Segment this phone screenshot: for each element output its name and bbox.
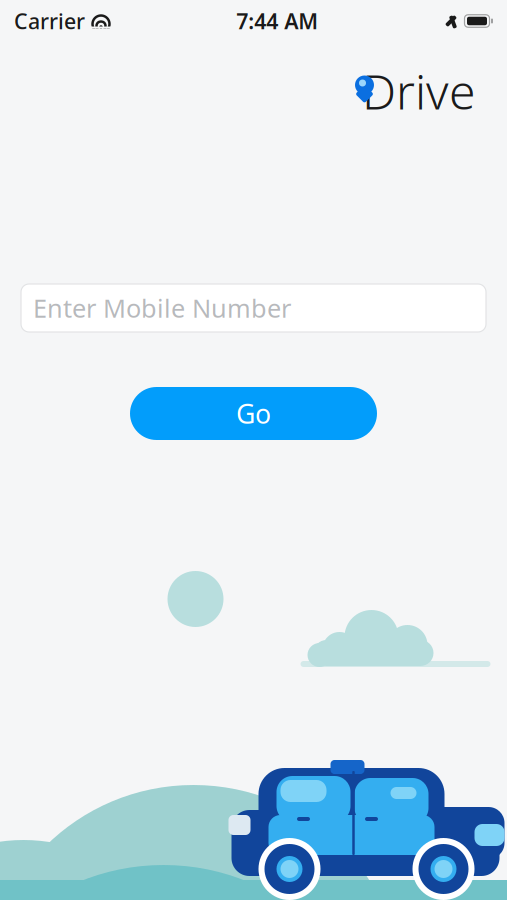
staticText: Enter Mobile Number: [33, 291, 291, 325]
staticText: Drive: [362, 59, 475, 123]
staticText: 7:44 AM: [236, 7, 318, 35]
button[interactable]: Go: [130, 387, 377, 440]
button[interactable]: Enter Mobile Number: [21, 284, 486, 332]
staticText: Go: [236, 396, 271, 431]
staticText: Carrier: [14, 7, 85, 35]
